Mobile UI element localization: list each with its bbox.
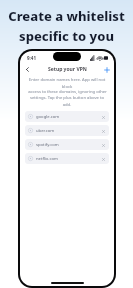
staticText: 9:41 xyxy=(27,55,36,61)
staticText: spotify.com xyxy=(36,142,59,148)
staticText: Create a whitelist xyxy=(8,7,125,25)
button[interactable]: spotify.com xyxy=(25,139,109,150)
staticText: access to these domains, ignoring other xyxy=(28,89,107,95)
button[interactable]: Add domain xyxy=(102,65,111,74)
button[interactable]: Remove netflix.com xyxy=(100,156,106,162)
button[interactable]: Remove spotify.com xyxy=(100,142,106,148)
staticText: uber.com xyxy=(36,128,55,134)
staticText: settings. Tap the plus button above to a… xyxy=(26,95,108,107)
button[interactable]: uber.com xyxy=(25,125,109,136)
staticText: specific to you xyxy=(19,27,114,45)
button[interactable]: Back xyxy=(23,65,32,74)
button[interactable]: Remove uber.com xyxy=(100,128,106,134)
staticText: google.com xyxy=(36,114,60,120)
staticText: netflix.com xyxy=(36,156,58,162)
button[interactable]: Remove google.com xyxy=(100,114,106,120)
staticText: Setup your VPN xyxy=(48,66,87,73)
button[interactable]: google.com xyxy=(25,111,109,122)
staticText: Enter domain names here. App will not bl… xyxy=(26,77,108,89)
button[interactable]: netflix.com xyxy=(25,153,109,164)
